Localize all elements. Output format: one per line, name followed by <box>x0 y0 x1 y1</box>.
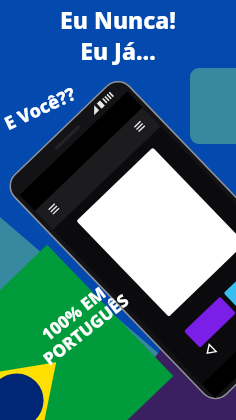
staticText: E Você?? <box>0 81 80 136</box>
staticText: Eu Já… <box>80 35 156 66</box>
staticText: Eu Nunca! <box>60 4 176 35</box>
staticText: 100% EM PORTUGUÊS <box>26 273 133 370</box>
